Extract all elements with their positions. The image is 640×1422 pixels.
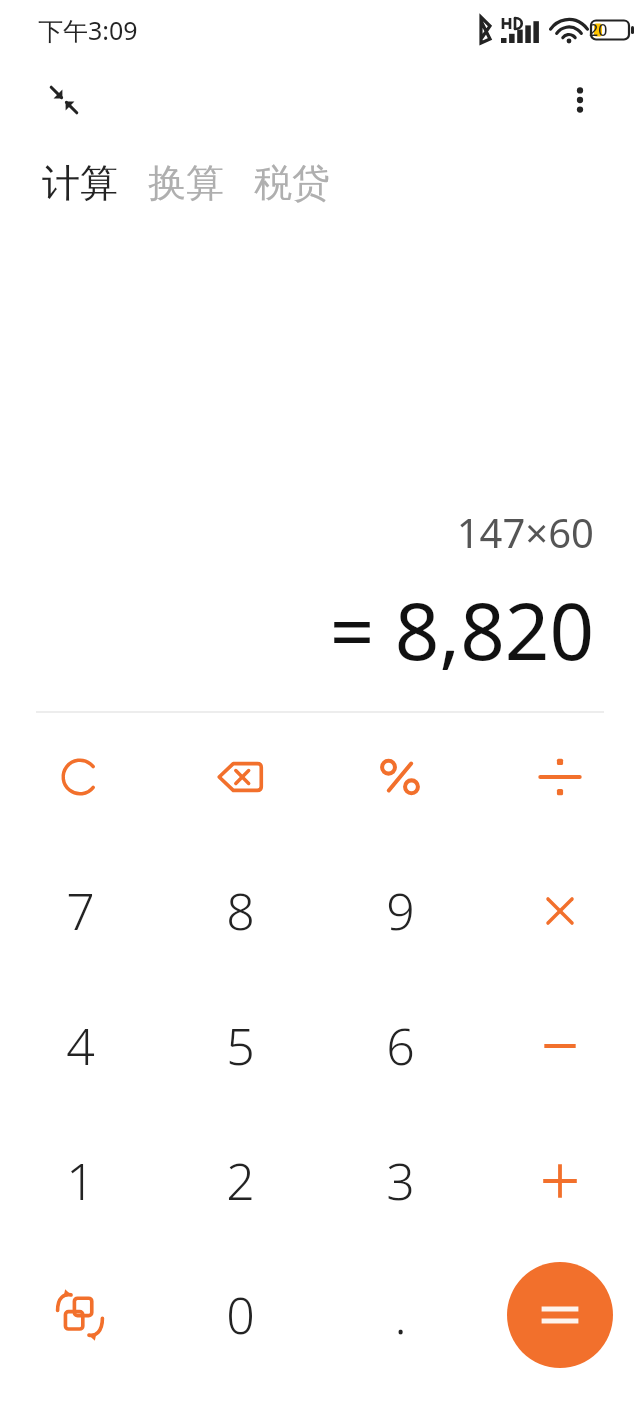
button[interactable]: Minus: [485, 984, 635, 1108]
button[interactable]: 1: [5, 1119, 155, 1243]
button[interactable]: 7: [5, 849, 155, 973]
button[interactable]: 9: [325, 849, 475, 973]
button[interactable]: Backspace: [165, 715, 315, 839]
button[interactable]: Plus: [485, 1119, 635, 1243]
button[interactable]: Convert units: [5, 1253, 155, 1377]
staticText: 1: [66, 1147, 95, 1215]
button[interactable]: .: [325, 1253, 475, 1377]
staticText: 7: [66, 877, 95, 945]
button[interactable]: 税贷: [252, 155, 332, 211]
staticText: 5: [226, 1012, 255, 1080]
button[interactable]: 3: [325, 1119, 475, 1243]
button[interactable]: Clear: [5, 715, 155, 839]
staticText: 147×60: [456, 505, 594, 559]
button[interactable]: Divide: [485, 715, 635, 839]
staticText: 2: [226, 1147, 255, 1215]
button[interactable]: 8: [165, 849, 315, 973]
staticText: 8: [226, 877, 255, 945]
button[interactable]: Equals: [507, 1262, 613, 1368]
button[interactable]: 0: [165, 1253, 315, 1377]
staticText: .: [394, 1281, 407, 1349]
button[interactable]: Percent: [325, 715, 475, 839]
button[interactable]: More options: [548, 68, 612, 132]
button[interactable]: 6: [325, 984, 475, 1108]
button[interactable]: 2: [165, 1119, 315, 1243]
staticText: 4: [66, 1012, 95, 1080]
button[interactable]: 换算: [146, 155, 226, 211]
staticText: = 8,820: [329, 577, 594, 683]
staticText: 0: [226, 1281, 255, 1349]
staticText: 6: [386, 1012, 415, 1080]
button[interactable]: 计算: [40, 155, 120, 211]
staticText: 税贷: [254, 159, 330, 207]
button[interactable]: Multiply: [485, 849, 635, 973]
button[interactable]: 5: [165, 984, 315, 1108]
staticText: 换算: [148, 159, 224, 207]
staticText: 计算: [42, 159, 118, 207]
staticText: 下午3:09: [38, 13, 138, 47]
button[interactable]: Collapse: [32, 68, 96, 132]
staticText: 3: [386, 1147, 415, 1215]
staticText: 20: [589, 19, 608, 41]
button[interactable]: 4: [5, 984, 155, 1108]
staticText: 9: [386, 877, 415, 945]
